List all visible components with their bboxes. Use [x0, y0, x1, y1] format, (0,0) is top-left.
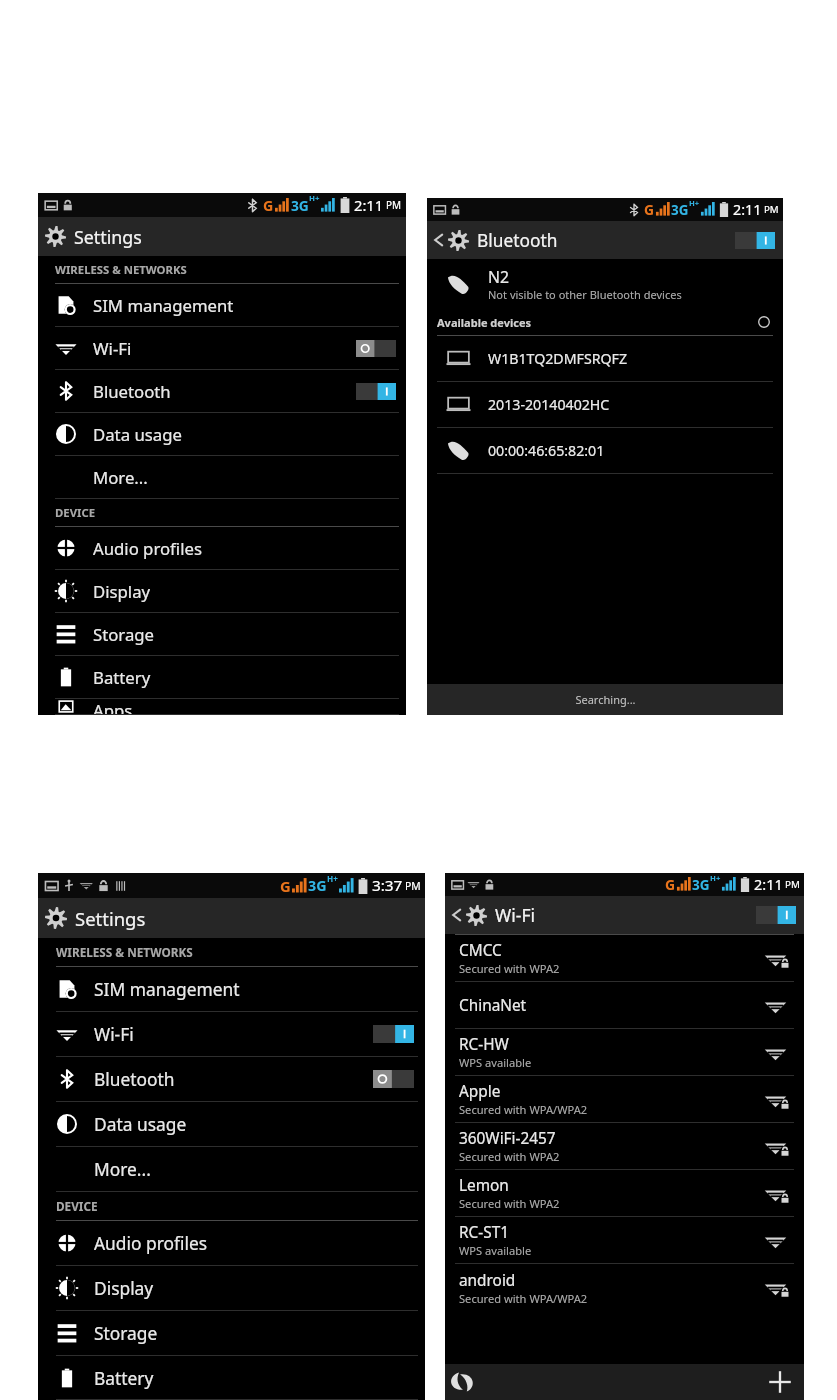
staticText: 3G [671, 201, 689, 219]
staticText: 2:11 [354, 195, 384, 215]
button[interactable]: Battery [38, 656, 406, 699]
button[interactable]: Apps [38, 699, 406, 715]
button[interactable]: Add network [762, 1364, 798, 1400]
button[interactable]: Toggle on [756, 906, 796, 924]
staticText: G [644, 200, 655, 219]
button[interactable]: Toggle on [735, 232, 775, 249]
staticText: PM [764, 203, 779, 216]
button[interactable]: Display [38, 1266, 425, 1311]
staticText: Secured with WPA2 [459, 1149, 560, 1164]
staticText: More... [93, 466, 148, 489]
button[interactable]: SIM management [38, 284, 406, 327]
staticText: Not visible to other Bluetooth devices [488, 287, 682, 302]
staticText: H+ [309, 193, 320, 204]
staticText: N2 [488, 266, 509, 287]
staticText: Available devices [437, 315, 532, 330]
button[interactable]: SIM management [38, 967, 425, 1012]
staticText: W1B1TQ2DMFSRQFZ [488, 349, 628, 368]
staticText: Battery [93, 666, 151, 689]
button[interactable]: Back [449, 907, 465, 923]
button[interactable]: More... [38, 456, 406, 499]
staticText: RC-HW [459, 1034, 509, 1055]
button[interactable]: Toggle off [373, 1070, 414, 1088]
staticText: 3:37 [372, 875, 403, 896]
staticText: Wi-Fi [93, 337, 132, 360]
staticText: 3G [308, 876, 327, 895]
button[interactable]: RC-ST1 [445, 1217, 804, 1264]
button[interactable]: Bluetooth [38, 370, 406, 413]
button[interactable]: WPS scan [445, 1366, 477, 1398]
staticText: Wi-Fi [94, 1022, 134, 1046]
staticText: PM [785, 878, 800, 891]
staticText: WIRELESS & NETWORKS [56, 944, 193, 960]
button[interactable]: Storage [38, 1311, 425, 1356]
staticText: Battery [94, 1366, 154, 1390]
staticText: WPS available [459, 1243, 532, 1258]
staticText: WIRELESS & NETWORKS [55, 262, 187, 277]
button[interactable]: Lemon [445, 1170, 804, 1217]
button[interactable]: Audio profiles [38, 527, 406, 570]
staticText: RC-ST1 [459, 1222, 509, 1243]
staticText: Bluetooth [93, 380, 171, 403]
button[interactable]: Bluetooth [38, 1057, 425, 1102]
staticText: H+ [689, 198, 700, 208]
button[interactable]: Toggle on [373, 1025, 414, 1043]
button[interactable]: 360WiFi-2457 [445, 1123, 804, 1170]
staticText: Storage [93, 623, 155, 646]
staticText: Bluetooth [94, 1067, 175, 1091]
staticText: Wi-Fi [495, 903, 535, 927]
staticText: Lemon [459, 1175, 509, 1196]
staticText: H+ [327, 873, 338, 884]
button[interactable]: Audio profiles [38, 1221, 425, 1266]
staticText: 2013-20140402HC [488, 395, 610, 414]
button[interactable]: RC-HW [445, 1029, 804, 1076]
staticText: Secured with WPA2 [459, 961, 560, 976]
staticText: G [263, 196, 274, 215]
staticText: More... [94, 1157, 151, 1181]
staticText: Secured with WPA2 [459, 1196, 560, 1211]
staticText: Searching... [575, 692, 636, 707]
staticText: Display [94, 1276, 154, 1300]
staticText: 00:00:46:65:82:01 [488, 441, 605, 460]
button[interactable]: Data usage [38, 413, 406, 456]
button[interactable]: Storage [38, 613, 406, 656]
staticText: android [459, 1270, 516, 1291]
staticText: 2:11 [733, 200, 762, 220]
button[interactable]: Toggle on [356, 383, 396, 400]
button[interactable]: N2 [427, 259, 783, 309]
staticText: G [665, 875, 676, 894]
staticText: G [280, 876, 291, 896]
staticText: Apps [93, 699, 133, 714]
button[interactable]: 00:00:46:65:82:01 [427, 428, 783, 474]
staticText: Settings [75, 906, 146, 931]
button[interactable]: Data usage [38, 1102, 425, 1147]
staticText: Storage [94, 1321, 158, 1345]
button[interactable]: Battery [38, 1356, 425, 1400]
staticText: Audio profiles [93, 537, 202, 560]
staticText: 2:11 [754, 875, 783, 895]
staticText: Apple [459, 1081, 501, 1102]
button[interactable]: Toggle off [356, 340, 396, 357]
staticText: 3G [291, 196, 309, 215]
staticText: SIM management [94, 977, 240, 1001]
staticText: WPS available [459, 1055, 532, 1070]
staticText: DEVICE [56, 1198, 98, 1214]
staticText: SIM management [93, 294, 234, 317]
button[interactable]: More... [38, 1147, 425, 1192]
button[interactable]: Back [431, 232, 447, 248]
staticText: Display [93, 580, 151, 603]
button[interactable]: 2013-20140402HC [427, 382, 783, 428]
staticText: Data usage [94, 1112, 187, 1136]
staticText: Secured with WPA/WPA2 [459, 1291, 588, 1306]
button[interactable]: Wi-Fi [38, 327, 406, 370]
button[interactable]: Searching... [427, 684, 783, 715]
button[interactable]: CMCC [445, 935, 804, 982]
button[interactable]: ChinaNet [445, 982, 804, 1029]
staticText: CMCC [459, 940, 502, 961]
button[interactable]: Wi-Fi [38, 1012, 425, 1057]
button[interactable]: Apple [445, 1076, 804, 1123]
button[interactable]: android [445, 1264, 804, 1311]
button[interactable]: Display [38, 570, 406, 613]
staticText: H+ [710, 873, 721, 883]
button[interactable]: W1B1TQ2DMFSRQFZ [427, 336, 783, 382]
